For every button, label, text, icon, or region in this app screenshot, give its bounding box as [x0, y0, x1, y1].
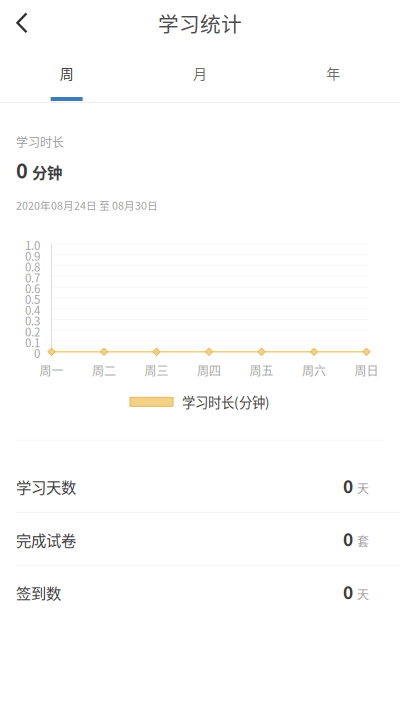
staticText: 周二	[92, 362, 116, 379]
staticText: 学习时长(分钟)	[182, 392, 270, 411]
staticText: 0	[343, 526, 353, 551]
staticText: 年	[326, 63, 340, 83]
staticText: 周日	[354, 362, 378, 379]
staticText: 0	[343, 579, 353, 604]
staticText: 周五	[249, 362, 273, 379]
staticText: 学习时长	[16, 133, 64, 150]
staticText: 0.7	[25, 269, 40, 286]
button[interactable]: 签到数	[0, 566, 400, 619]
staticText: 1.0	[25, 237, 40, 253]
staticText: 天	[357, 479, 369, 497]
staticText: 学习统计	[158, 8, 242, 38]
staticText: 2020年08月24日 至 08月30日	[16, 197, 158, 213]
button[interactable]: Back	[0, 0, 42, 46]
staticText: 0.8	[25, 258, 40, 275]
button[interactable]: 学习天数	[0, 460, 400, 513]
staticText: 0.3	[25, 312, 40, 329]
staticText: 完成试卷	[16, 529, 76, 551]
staticText: 周一	[39, 362, 63, 379]
staticText: 0.6	[25, 280, 40, 296]
staticText: 0.4	[25, 301, 40, 318]
staticText: 套	[357, 532, 369, 550]
button[interactable]: 月	[133, 46, 267, 102]
staticText: 签到数	[16, 582, 61, 604]
staticText: 0	[34, 345, 40, 361]
button[interactable]: 周	[0, 46, 133, 102]
button[interactable]: 完成试卷	[0, 513, 400, 566]
staticText: 学习天数	[16, 476, 76, 498]
staticText: 天	[357, 585, 369, 603]
staticText: 周六	[302, 362, 326, 379]
staticText: 0.9	[25, 247, 40, 264]
staticText: 分钟	[32, 161, 62, 183]
staticText: 0	[16, 155, 28, 184]
staticText: 周三	[144, 362, 168, 379]
staticText: 周	[60, 63, 74, 83]
button[interactable]: 年	[267, 46, 400, 102]
staticText: 月	[193, 63, 207, 83]
staticText: 0	[343, 473, 353, 498]
staticText: 0.2	[25, 323, 40, 340]
staticText: 周四	[197, 362, 221, 379]
staticText: 0.1	[25, 334, 40, 350]
staticText: 0.5	[25, 291, 40, 307]
